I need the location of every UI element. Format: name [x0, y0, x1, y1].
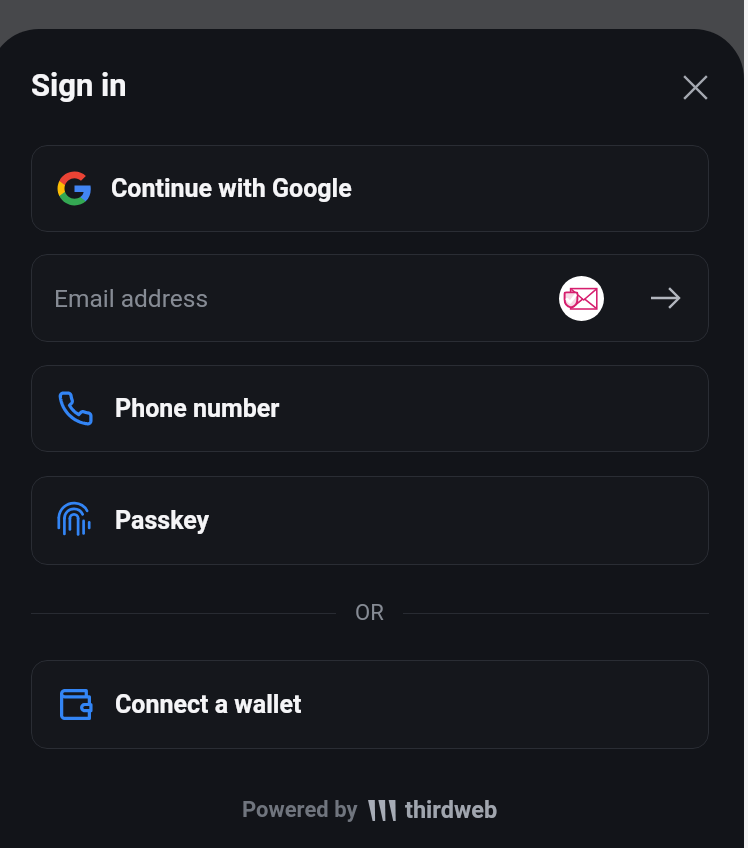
staticText: Powered by	[242, 797, 358, 823]
staticText: OR	[355, 600, 384, 626]
button[interactable]: Phone number	[31, 365, 709, 452]
button[interactable]: Connect a wallet	[31, 660, 709, 749]
staticText: Passkey	[115, 506, 210, 535]
button[interactable]: Close	[675, 67, 715, 107]
staticText: Sign in	[31, 67, 127, 103]
staticText: Connect a wallet	[115, 690, 302, 719]
staticText: thirdweb	[405, 796, 498, 824]
button[interactable]: Passkey	[31, 476, 709, 565]
button[interactable]: Email address	[31, 254, 709, 342]
button[interactable]: Continue with Google	[31, 145, 709, 232]
staticText: Continue with Google	[111, 174, 352, 203]
staticText: Email address	[54, 284, 209, 313]
staticText: Phone number	[115, 394, 280, 423]
